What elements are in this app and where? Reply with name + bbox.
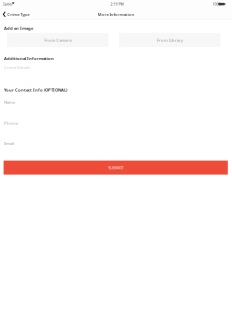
staticText: Crime Type: [7, 11, 29, 17]
button[interactable]: Crime Type: [0, 9, 33, 20]
staticText: More Information: [97, 11, 134, 17]
staticText: Phone: [4, 120, 18, 126]
staticText: Carrier: [3, 2, 13, 6]
staticText: Name: [4, 99, 15, 105]
staticText: SUBMIT: [108, 165, 123, 170]
staticText: Crime Details: [4, 64, 30, 70]
button[interactable]: SUBMIT: [4, 161, 228, 175]
button[interactable]: From Library: [119, 33, 221, 47]
staticText: Add an Image: [4, 25, 33, 31]
staticText: 2:19 PM: [110, 2, 123, 6]
staticText: From Library: [157, 37, 183, 43]
staticText: Additional Information: [4, 55, 54, 61]
staticText: 100%: [213, 2, 222, 6]
staticText: Your Contact Info (OPTIONAL): [4, 87, 67, 93]
staticText: From Camera: [44, 37, 71, 43]
staticText: Email: [4, 140, 14, 146]
button[interactable]: From Camera: [7, 33, 109, 47]
